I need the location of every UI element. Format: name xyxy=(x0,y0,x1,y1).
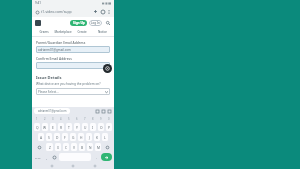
staticText: Log In xyxy=(91,21,100,25)
button[interactable]: R xyxy=(58,123,64,131)
staticText: ?123 xyxy=(35,156,41,159)
button[interactable]: Voice input xyxy=(106,108,112,114)
button[interactable]: F xyxy=(62,133,68,141)
button[interactable]: K xyxy=(94,133,100,141)
staticText: 1 xyxy=(36,117,38,121)
staticText: K xyxy=(96,135,99,139)
button[interactable]: 9 xyxy=(97,115,105,122)
button[interactable]: adrianm01@gmail.com xyxy=(34,108,70,114)
button[interactable]: I xyxy=(90,123,96,131)
button[interactable]: Marketplace xyxy=(53,28,72,36)
button[interactable]: Clipboard xyxy=(100,108,106,114)
staticText: Create xyxy=(77,30,87,34)
staticText: adrianm01@gmail.com xyxy=(38,109,67,113)
button[interactable]: Log In xyxy=(89,20,102,26)
button[interactable]: Help xyxy=(103,64,112,73)
staticText: S xyxy=(48,135,50,139)
button[interactable]: T xyxy=(66,123,72,131)
button[interactable]: More options xyxy=(106,9,112,15)
staticText: U xyxy=(84,125,87,129)
staticText: 3 xyxy=(52,117,54,121)
staticText: G xyxy=(72,135,75,139)
button[interactable]: 4 xyxy=(57,115,65,122)
button[interactable] xyxy=(36,62,110,69)
staticText: X xyxy=(57,145,59,149)
staticText: J xyxy=(89,135,90,139)
button[interactable]: Site logo xyxy=(35,20,41,26)
staticText: 2 xyxy=(44,117,46,121)
button[interactable]: Backspace xyxy=(103,143,112,151)
button[interactable]: Y xyxy=(74,123,80,131)
button[interactable]: Shift xyxy=(34,143,44,151)
button[interactable]: W xyxy=(42,123,48,131)
staticText: N xyxy=(89,145,92,149)
button[interactable]: 1 xyxy=(33,115,41,122)
button[interactable]: O xyxy=(98,123,104,131)
staticText: A xyxy=(40,135,43,139)
staticText: V xyxy=(73,145,75,149)
button[interactable]: M xyxy=(95,143,101,151)
button[interactable]: N xyxy=(87,143,93,151)
button[interactable]: Enter xyxy=(101,153,112,161)
button[interactable]: Comma xyxy=(44,153,49,161)
button[interactable]: 5 xyxy=(65,115,73,122)
button[interactable]: 3 xyxy=(49,115,57,122)
button[interactable]: 0 xyxy=(105,115,113,122)
button[interactable]: 6 xyxy=(73,115,81,122)
button[interactable]: GIF xyxy=(94,108,100,114)
staticText: L xyxy=(104,135,106,139)
button[interactable]: Emoji xyxy=(51,153,57,161)
button[interactable]: Recents xyxy=(92,163,98,169)
button[interactable]: A xyxy=(38,133,44,141)
button[interactable]: D xyxy=(54,133,60,141)
staticText: Issue Details xyxy=(36,75,62,80)
button[interactable]: Notice xyxy=(92,28,112,36)
staticText: Q xyxy=(36,125,39,129)
button[interactable]: Sign Up xyxy=(70,20,87,26)
staticText: B xyxy=(81,145,84,149)
staticText: Sign Up xyxy=(73,21,85,25)
button[interactable]: Create xyxy=(72,28,92,36)
staticText: Parent/Guardian Email Address xyxy=(36,40,86,44)
button[interactable]: adrianm01@gmail.com xyxy=(36,46,110,53)
staticText: , xyxy=(46,155,47,160)
staticText: . xyxy=(96,155,97,160)
staticText: R xyxy=(60,125,63,129)
staticText: 8 xyxy=(92,117,94,121)
button[interactable]: Please Select... xyxy=(36,88,110,95)
button[interactable]: Z xyxy=(46,143,53,151)
button[interactable]: U xyxy=(82,123,88,131)
staticText: I xyxy=(92,125,94,129)
button[interactable]: G xyxy=(70,133,76,141)
button[interactable]: H xyxy=(78,133,84,141)
button[interactable]: E xyxy=(50,123,56,131)
button[interactable]: S xyxy=(46,133,52,141)
button[interactable]: V xyxy=(71,143,77,151)
staticText: C xyxy=(65,145,68,149)
button[interactable]: X xyxy=(55,143,61,151)
button[interactable]: Back xyxy=(49,163,55,169)
button[interactable]: Home xyxy=(70,163,76,169)
button[interactable]: 7 xyxy=(81,115,89,122)
button[interactable]: Site information xyxy=(34,9,40,15)
staticText: F xyxy=(64,135,66,139)
button[interactable]: Grams xyxy=(34,28,53,36)
button[interactable]: P xyxy=(106,123,112,131)
button[interactable]: ?123 xyxy=(34,153,42,161)
button[interactable]: 2 xyxy=(41,115,49,122)
button[interactable]: New tab xyxy=(92,8,99,15)
staticText: Y xyxy=(76,125,78,129)
button[interactable]: L xyxy=(102,133,108,141)
button[interactable]: J xyxy=(86,133,92,141)
button[interactable]: 8 xyxy=(89,115,97,122)
staticText: 0 xyxy=(108,117,110,121)
staticText: D xyxy=(56,135,59,139)
button[interactable]: B xyxy=(79,143,85,151)
button[interactable]: C xyxy=(63,143,69,151)
button[interactable]: Open tabs xyxy=(99,8,106,15)
button[interactable]: Search xyxy=(104,19,111,26)
button[interactable]: Q xyxy=(34,123,40,131)
staticText: E xyxy=(52,125,54,129)
